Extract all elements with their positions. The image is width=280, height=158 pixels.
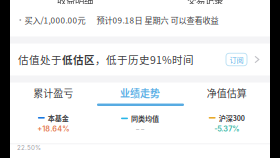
- staticText: 订阅: [229, 54, 243, 65]
- staticText: 买入/1,000.00元: [25, 14, 86, 26]
- staticText: 本基金: [48, 113, 69, 123]
- staticText: +18.64%: [37, 124, 69, 133]
- staticText: 累计盈亏: [33, 86, 73, 100]
- staticText: 交易记录: [187, 0, 223, 7]
- button[interactable]: 订阅: [226, 53, 247, 66]
- staticText: ，低于历史91%时间: [95, 52, 194, 67]
- staticText: 同类均值: [131, 113, 159, 123]
- staticText: 预计09.18日 星期六 可以查看收益: [97, 14, 219, 26]
- staticText: 净值估算: [207, 86, 247, 100]
- staticText: 22.50%: [17, 144, 41, 151]
- staticText: 业绩走势: [120, 86, 160, 100]
- button[interactable]: 收益明细: [10, 0, 140, 5]
- button[interactable]: 交易记录: [140, 0, 270, 5]
- staticText: – –: [136, 125, 144, 133]
- staticText: 低估区: [62, 52, 95, 67]
- staticText: -5.37%: [214, 124, 239, 133]
- staticText: 沪深300: [219, 113, 245, 123]
- staticText: 估值处于: [18, 52, 62, 67]
- button[interactable]: 净值估算: [183, 82, 270, 103]
- staticText: 收益明细: [57, 0, 93, 7]
- button[interactable]: 累计盈亏: [10, 82, 97, 103]
- button[interactable]: 业绩走势: [97, 82, 183, 103]
- button[interactable]: 查看估值详情: [252, 52, 262, 66]
